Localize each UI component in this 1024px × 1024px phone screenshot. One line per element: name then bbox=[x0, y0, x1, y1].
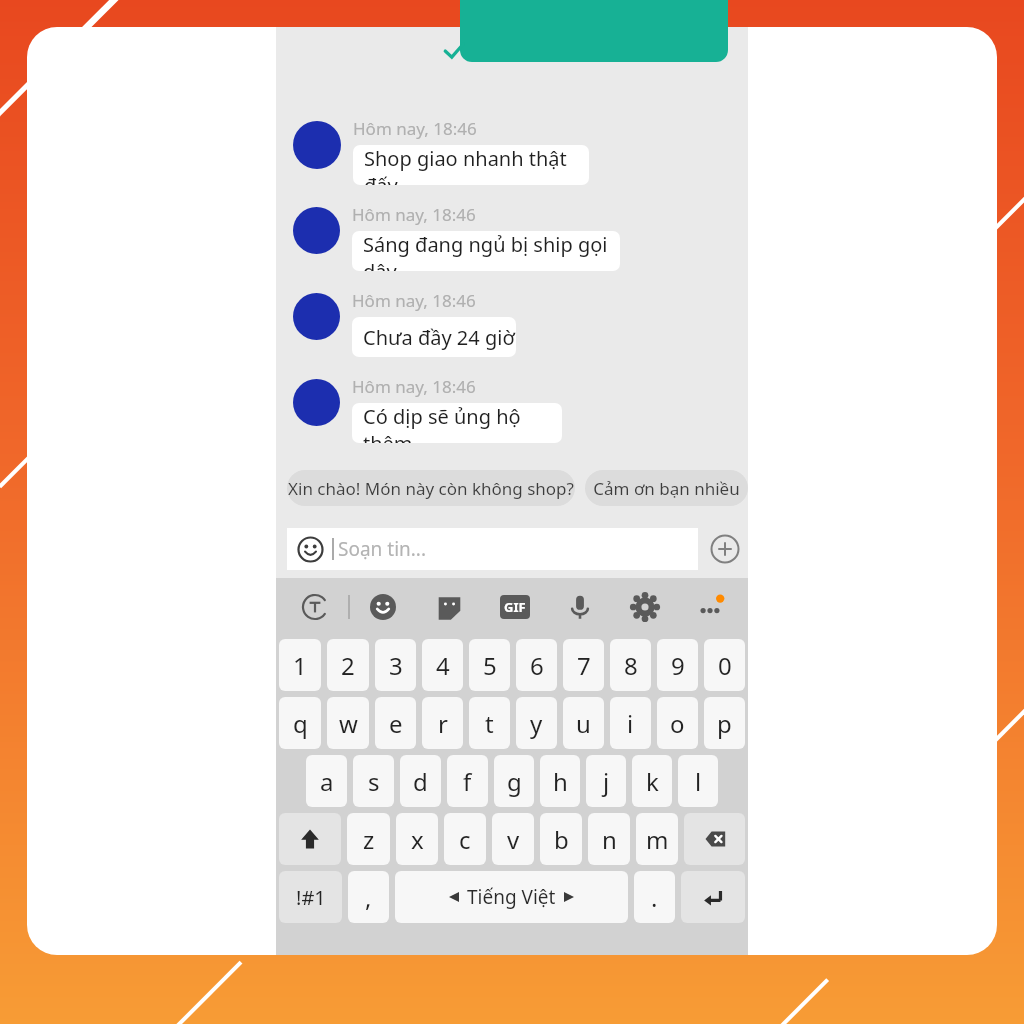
button[interactable]: z bbox=[347, 813, 390, 865]
staticText: Xin chào! Món này còn không shop? bbox=[288, 477, 574, 500]
button[interactable]: m bbox=[636, 813, 678, 865]
button[interactable]: 9 bbox=[657, 639, 698, 691]
staticText: 7 bbox=[577, 649, 591, 682]
staticText: l bbox=[695, 765, 702, 798]
staticText: c bbox=[459, 823, 471, 856]
button[interactable]: e bbox=[375, 697, 416, 749]
button[interactable] bbox=[293, 293, 340, 340]
staticText: 6 bbox=[530, 649, 544, 682]
button[interactable]: Tiếng Việt bbox=[395, 871, 628, 923]
staticText: Tiếng Việt bbox=[467, 884, 556, 910]
staticText: x bbox=[411, 823, 424, 856]
staticText: Soạn tin... bbox=[338, 536, 427, 562]
other: Emoji bbox=[297, 536, 324, 563]
button[interactable]: 6 bbox=[516, 639, 557, 691]
button[interactable]: More options bbox=[695, 592, 725, 622]
button[interactable] bbox=[293, 379, 340, 426]
button[interactable]: q bbox=[279, 697, 321, 749]
button[interactable]: , bbox=[348, 871, 389, 923]
button[interactable] bbox=[460, 0, 728, 62]
button[interactable]: n bbox=[588, 813, 630, 865]
staticText: 2 bbox=[341, 649, 355, 682]
button[interactable]: 3 bbox=[375, 639, 416, 691]
button[interactable]: Shop giao nhanh thật đấy bbox=[353, 145, 589, 185]
button[interactable]: Emoji bbox=[287, 528, 698, 570]
staticText: a bbox=[320, 765, 334, 798]
staticText: z bbox=[363, 823, 375, 856]
button[interactable]: r bbox=[422, 697, 463, 749]
staticText: 0 bbox=[718, 649, 732, 682]
staticText: m bbox=[646, 823, 669, 856]
button[interactable]: Enter bbox=[681, 871, 745, 923]
button[interactable]: a bbox=[306, 755, 347, 807]
button[interactable]: i bbox=[610, 697, 651, 749]
button[interactable]: b bbox=[540, 813, 582, 865]
staticText: n bbox=[602, 823, 617, 856]
button[interactable]: w bbox=[327, 697, 369, 749]
button[interactable]: Có dịp sẽ ủng hộ thêm bbox=[352, 403, 562, 443]
staticText: 9 bbox=[671, 649, 685, 682]
staticText: Hôm nay, 18:46 bbox=[353, 117, 477, 140]
button[interactable]: Voice input bbox=[566, 593, 594, 621]
button[interactable]: d bbox=[400, 755, 441, 807]
button[interactable]: k bbox=[632, 755, 672, 807]
button[interactable]: Translate bbox=[301, 593, 329, 621]
staticText: 4 bbox=[436, 649, 450, 682]
button[interactable]: 0 bbox=[704, 639, 745, 691]
button[interactable]: c bbox=[444, 813, 486, 865]
button[interactable]: t bbox=[469, 697, 510, 749]
staticText: d bbox=[413, 765, 428, 798]
button[interactable]: Add attachment bbox=[710, 534, 740, 564]
staticText: Hôm nay, 18:46 bbox=[352, 203, 476, 226]
button[interactable]: Backspace bbox=[684, 813, 745, 865]
staticText: Có dịp sẽ ủng hộ thêm bbox=[363, 403, 562, 443]
button[interactable]: Settings bbox=[631, 593, 659, 621]
button[interactable]: . bbox=[634, 871, 675, 923]
staticText: k bbox=[646, 765, 659, 798]
button[interactable]: Emoji bbox=[369, 593, 397, 621]
staticText: p bbox=[717, 707, 732, 740]
button[interactable]: f bbox=[447, 755, 488, 807]
staticText: GIF bbox=[504, 598, 526, 616]
button[interactable]: !#1 bbox=[279, 871, 342, 923]
button[interactable]: Stickers bbox=[436, 594, 463, 621]
staticText: 8 bbox=[624, 649, 638, 682]
button[interactable]: u bbox=[563, 697, 604, 749]
button[interactable]: v bbox=[492, 813, 534, 865]
staticText: v bbox=[507, 823, 520, 856]
staticText: f bbox=[463, 765, 472, 798]
button[interactable] bbox=[293, 207, 340, 254]
button[interactable]: 1 bbox=[279, 639, 321, 691]
button[interactable]: Xin chào! Món này còn không shop? bbox=[287, 470, 575, 506]
staticText: u bbox=[576, 707, 591, 740]
button[interactable]: l bbox=[678, 755, 718, 807]
button[interactable]: g bbox=[494, 755, 534, 807]
button[interactable]: 5 bbox=[469, 639, 510, 691]
button[interactable]: x bbox=[396, 813, 438, 865]
button[interactable]: Sáng đang ngủ bị ship gọi dậy bbox=[352, 231, 620, 271]
staticText: . bbox=[651, 881, 658, 914]
button[interactable]: j bbox=[586, 755, 626, 807]
button[interactable]: p bbox=[704, 697, 745, 749]
button[interactable]: h bbox=[540, 755, 580, 807]
button[interactable]: 4 bbox=[422, 639, 463, 691]
staticText: 3 bbox=[389, 649, 403, 682]
staticText: h bbox=[553, 765, 568, 798]
button[interactable]: o bbox=[657, 697, 698, 749]
staticText: b bbox=[554, 823, 569, 856]
staticText: , bbox=[365, 881, 372, 914]
button[interactable]: s bbox=[353, 755, 394, 807]
staticText: 1 bbox=[293, 649, 307, 682]
button[interactable]: 8 bbox=[610, 639, 651, 691]
button[interactable]: 2 bbox=[327, 639, 369, 691]
button[interactable]: Cảm ơn bạn nhiều nhé! bbox=[585, 470, 748, 506]
button[interactable]: Shift bbox=[279, 813, 341, 865]
button[interactable] bbox=[293, 121, 341, 169]
staticText: y bbox=[530, 707, 543, 740]
button[interactable]: GIF bbox=[500, 595, 530, 619]
button[interactable]: y bbox=[516, 697, 557, 749]
button[interactable]: 7 bbox=[563, 639, 604, 691]
staticText: Cảm ơn bạn nhiều nhé! bbox=[585, 477, 748, 500]
staticText: Hôm nay, 18:46 bbox=[352, 289, 476, 312]
button[interactable]: Chưa đầy 24 giờ bbox=[352, 317, 516, 357]
